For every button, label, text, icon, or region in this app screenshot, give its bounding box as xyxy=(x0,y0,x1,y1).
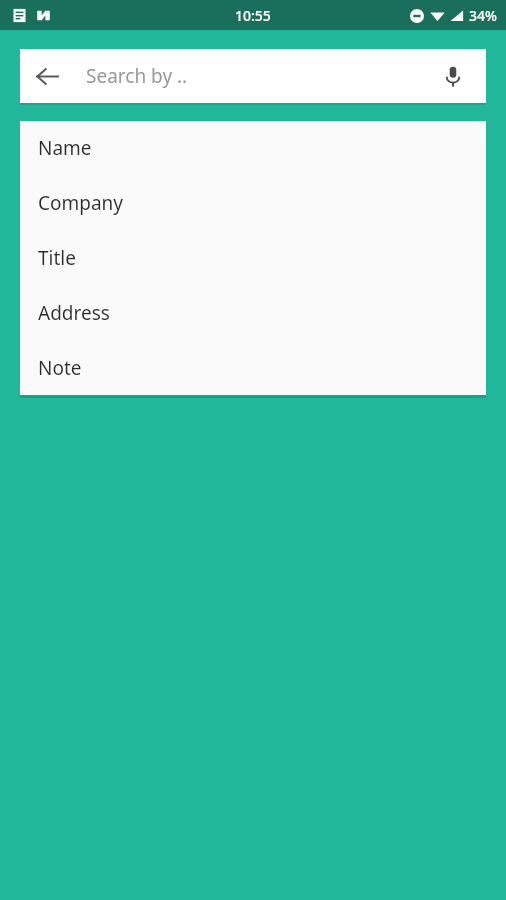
button[interactable]: Address xyxy=(20,285,486,340)
button[interactable]: Company xyxy=(20,175,486,230)
button[interactable]: Voice search xyxy=(426,49,480,103)
button[interactable]: Note xyxy=(20,340,486,395)
button[interactable]: Back xyxy=(20,49,74,103)
staticText: 34% xyxy=(469,6,497,25)
button[interactable]: Back xyxy=(20,49,486,103)
staticText: Company xyxy=(38,190,124,216)
button[interactable]: Title xyxy=(20,230,486,285)
staticText: Address xyxy=(38,300,110,326)
staticText: Note xyxy=(38,355,82,381)
button[interactable]: Name xyxy=(20,121,486,175)
staticText: Title xyxy=(38,245,76,271)
staticText: Name xyxy=(38,135,92,161)
staticText: 10:55 xyxy=(235,6,271,25)
staticText: Search by .. xyxy=(86,63,188,89)
